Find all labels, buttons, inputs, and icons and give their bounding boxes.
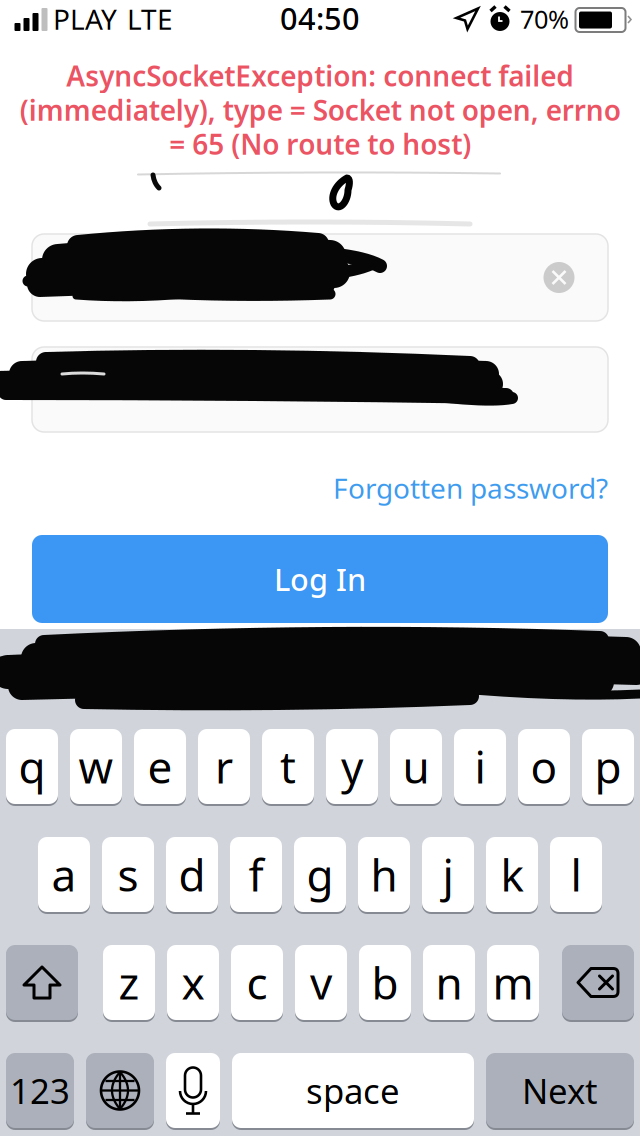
button[interactable]: p [582,728,634,805]
button[interactable]: x [167,944,219,1021]
staticText: space [306,1067,400,1113]
button[interactable]: Log In [32,535,608,623]
staticText: z [118,953,139,1012]
staticText: h [370,845,397,904]
button[interactable]: o [518,728,570,805]
button[interactable]: c [231,944,283,1021]
staticText: PLAY [53,0,117,38]
staticText: e [147,737,172,796]
button[interactable]: h [358,836,410,913]
button[interactable]: u [390,728,442,805]
button[interactable]: Shift [6,944,78,1021]
staticText: 123 [10,1067,70,1113]
button[interactable]: w [70,728,122,805]
button[interactable]: Forgotten password? [268,466,608,510]
button[interactable]: g [294,836,346,913]
staticText: a [51,845,76,904]
staticText: l [570,845,581,904]
staticText: Log In [274,559,366,599]
button[interactable]: y [326,728,378,805]
staticText: x [181,953,204,1012]
button[interactable]: j [422,836,474,913]
staticText: o [530,737,557,796]
button[interactable]: a [38,836,90,913]
staticText: r [215,737,233,796]
staticText: = 65 (No route to host) [169,125,471,163]
button[interactable]: z [103,944,155,1021]
staticText: Forgotten password? [333,469,608,507]
button[interactable]: r [198,728,250,805]
button[interactable]: f [230,836,282,913]
staticText: b [371,953,398,1012]
staticText: u [402,737,429,796]
staticText: t [280,737,296,796]
button[interactable]: Next [486,1052,634,1129]
button[interactable]: l [550,836,602,913]
button[interactable]: q [6,728,58,805]
staticText: n [435,953,462,1012]
staticText: k [500,845,523,904]
button[interactable]: Dictation [166,1052,220,1129]
button[interactable]: Next keyboard [86,1052,154,1129]
button[interactable]: Delete [562,944,634,1021]
button[interactable]: v [295,944,347,1021]
staticText: AsyncSocketException: connect failed [66,57,574,94]
staticText: 04:50 [280,0,360,38]
button[interactable]: m [487,944,539,1021]
staticText: v [310,953,332,1012]
button[interactable]: space [232,1052,474,1129]
staticText: j [442,845,453,904]
button[interactable]: s [102,836,154,913]
staticText: c [246,953,267,1012]
staticText: Next [522,1067,598,1113]
button[interactable]: i [454,728,506,805]
staticText: m [492,953,533,1012]
button[interactable]: d [166,836,218,913]
staticText: f [248,845,263,904]
staticText: g [306,845,333,904]
staticText: p [594,737,621,796]
staticText: 70% [520,2,569,36]
button[interactable]: e [134,728,186,805]
staticText: q [18,737,45,796]
staticText: d [178,845,205,904]
button[interactable]: 123 [6,1052,74,1129]
button[interactable]: Clear text [531,249,587,305]
staticText: LTE [127,0,173,38]
button[interactable]: k [486,836,538,913]
button[interactable]: n [423,944,475,1021]
staticText: (immediately), type = Socket not open, e… [19,91,620,128]
staticText: w [78,737,113,796]
button[interactable]: t [262,728,314,805]
staticText: s [117,845,138,904]
staticText: i [474,737,485,796]
button[interactable]: b [359,944,411,1021]
staticText: y [341,737,363,796]
